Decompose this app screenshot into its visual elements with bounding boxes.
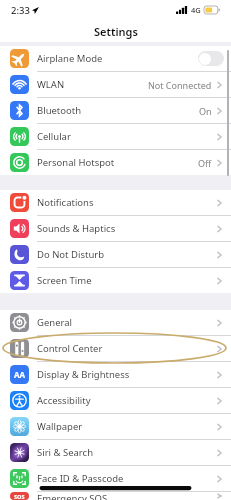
button[interactable]: SOS <box>0 492 231 500</box>
button[interactable]: Sounds & Haptics <box>0 216 231 242</box>
staticText: 2:33 <box>11 4 30 17</box>
staticText: SOS <box>14 493 25 500</box>
staticText: Notifications <box>37 196 94 209</box>
staticText: Screen Time <box>37 274 92 287</box>
button[interactable]: Airplane Mode <box>0 46 231 72</box>
button[interactable]: Do Not Disturb <box>0 242 231 268</box>
button[interactable]: WLAN <box>0 72 231 98</box>
staticText: Control Center <box>37 342 103 355</box>
button[interactable]: Screen Time <box>0 268 231 293</box>
button[interactable]: Bluetooth <box>0 98 231 124</box>
staticText: AA <box>14 369 26 380</box>
staticText: Off <box>198 157 212 169</box>
button[interactable]: Wallpaper <box>0 414 231 440</box>
staticText: Wallpaper <box>37 420 83 433</box>
button[interactable]: AA <box>0 362 231 388</box>
staticText: General <box>37 316 73 329</box>
staticText: 4G <box>191 5 201 15</box>
staticText: Bluetooth <box>37 104 82 117</box>
staticText: Airplane Mode <box>37 52 103 65</box>
staticText: WLAN <box>37 78 65 91</box>
button[interactable]: Notifications <box>0 190 231 216</box>
button[interactable]: Personal Hotspot <box>0 150 231 175</box>
button[interactable]: Accessibility <box>0 388 231 414</box>
staticText: Siri & Search <box>37 446 94 459</box>
staticText: Do Not Disturb <box>37 248 105 261</box>
staticText: On <box>199 105 212 117</box>
staticText: Accessibility <box>37 394 91 407</box>
button[interactable]: General <box>0 310 231 336</box>
button[interactable]: Face ID & Passcode <box>0 466 231 492</box>
button[interactable]: Control Center <box>0 336 231 362</box>
staticText: Sounds & Haptics <box>37 222 116 235</box>
staticText: Emergency SOS <box>37 492 108 500</box>
staticText: Personal Hotspot <box>37 156 115 169</box>
staticText: Face ID & Passcode <box>37 472 124 485</box>
button[interactable]: Siri & Search <box>0 440 231 466</box>
staticText: Not Connected <box>148 79 212 91</box>
staticText: Display & Brightness <box>37 368 130 381</box>
staticText: Cellular <box>37 130 71 143</box>
staticText: Settings <box>94 24 138 39</box>
button[interactable]: Cellular <box>0 124 231 150</box>
